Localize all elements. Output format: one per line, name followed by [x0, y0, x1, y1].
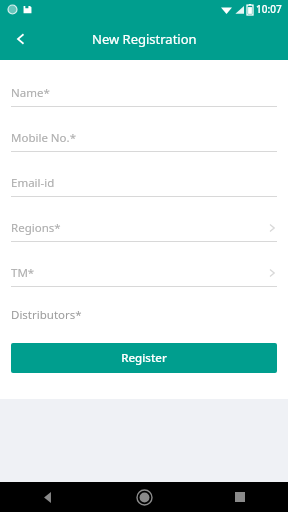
staticText: Distributors* [11, 307, 82, 323]
staticText: New Registration [92, 30, 197, 48]
staticText: Name* [11, 85, 50, 101]
staticText: Regions* [11, 220, 61, 236]
button[interactable]: Regions* [0, 215, 288, 260]
button[interactable]: Home [96, 482, 192, 512]
button[interactable]: Email-id [0, 170, 288, 215]
staticText: Email-id [11, 175, 55, 191]
button[interactable]: Register [11, 343, 277, 373]
button[interactable]: Back [0, 18, 42, 60]
staticText: Register [121, 350, 167, 366]
staticText: Mobile No.* [11, 130, 76, 146]
button[interactable]: Recents [192, 482, 288, 512]
button[interactable]: Mobile No.* [0, 125, 288, 170]
button[interactable]: Back [0, 482, 96, 512]
button[interactable]: TM* [0, 260, 288, 305]
button[interactable]: Distributors* [0, 305, 288, 325]
staticText: 10:07 [256, 2, 282, 16]
staticText: TM* [11, 265, 35, 281]
button[interactable]: Name* [0, 80, 288, 125]
